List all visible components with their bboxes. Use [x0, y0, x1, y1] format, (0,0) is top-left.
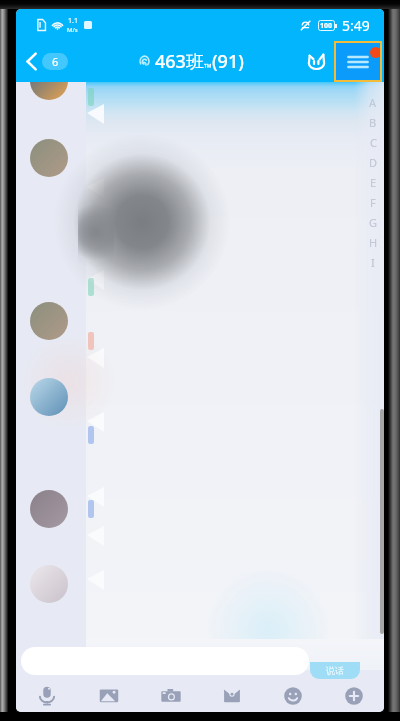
staticText: H [369, 235, 378, 250]
staticText: 5:49 [342, 16, 370, 35]
button[interactable]: Photos [78, 680, 140, 712]
staticText: E [370, 175, 377, 190]
staticText: 100 [320, 21, 333, 31]
staticText: D [369, 155, 378, 170]
button[interactable]: Red packet [201, 680, 262, 712]
button[interactable]: Voice message [16, 680, 78, 712]
button[interactable]: Contact avatar [30, 565, 68, 603]
staticText: C [370, 135, 377, 150]
staticText: M/s [67, 26, 78, 34]
button[interactable]: Back, 6 unread [26, 41, 68, 82]
button[interactable]: Group pet [298, 41, 334, 82]
button[interactable]: Send [310, 662, 360, 679]
staticText: 463班 [155, 49, 204, 74]
button[interactable]: More [323, 680, 384, 712]
staticText: I [371, 255, 375, 270]
staticText: 6 [52, 54, 59, 69]
button[interactable]: Contact avatar [30, 139, 68, 177]
staticText: 说话 [326, 665, 344, 676]
button[interactable]: Contact avatar [30, 302, 68, 340]
button[interactable]: Emoji [262, 680, 323, 712]
button[interactable]: Contact avatar [30, 490, 68, 528]
staticText: ™ [204, 60, 212, 74]
staticText: 1.1 [68, 16, 78, 26]
staticText: A [369, 95, 377, 110]
staticText: (91) [212, 49, 244, 74]
button[interactable]: Contact avatar [30, 82, 68, 100]
staticText: G [369, 215, 378, 230]
button[interactable]: Menu [334, 41, 382, 82]
staticText: F [370, 195, 376, 210]
button[interactable]: Camera [140, 680, 201, 712]
button[interactable]: Contact avatar [30, 378, 68, 416]
staticText: B [369, 115, 377, 130]
